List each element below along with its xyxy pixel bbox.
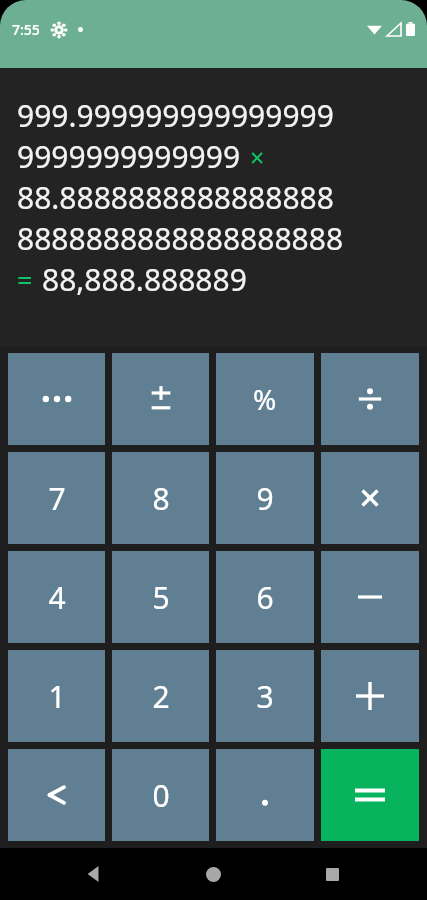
button[interactable] bbox=[8, 749, 105, 841]
staticText: 8 bbox=[152, 478, 170, 519]
button[interactable]: 8 bbox=[112, 452, 209, 544]
staticText: 88.8888888888888888 bbox=[17, 177, 334, 218]
staticText: 9 bbox=[256, 478, 274, 519]
button[interactable] bbox=[321, 551, 419, 643]
button[interactable]: % bbox=[216, 353, 314, 445]
staticText: 88,888.888889 bbox=[42, 259, 247, 300]
button[interactable]: Home bbox=[189, 850, 237, 898]
button[interactable]: 5 bbox=[112, 551, 209, 643]
button[interactable]: 4 bbox=[8, 551, 105, 643]
button[interactable]: Back bbox=[70, 850, 118, 898]
button[interactable]: 6 bbox=[216, 551, 314, 643]
button[interactable]: Recent apps bbox=[308, 850, 356, 898]
button[interactable] bbox=[321, 749, 419, 841]
button[interactable] bbox=[321, 650, 419, 742]
button[interactable]: 9 bbox=[216, 452, 314, 544]
button[interactable]: 3 bbox=[216, 650, 314, 742]
button[interactable]: 2 bbox=[112, 650, 209, 742]
staticText: % bbox=[253, 380, 277, 418]
staticText: 0 bbox=[152, 775, 170, 816]
button[interactable] bbox=[8, 353, 105, 445]
staticText: 8888888888888888888 bbox=[17, 218, 344, 259]
button[interactable] bbox=[321, 452, 419, 544]
button[interactable] bbox=[216, 749, 314, 841]
staticText: 5 bbox=[152, 577, 170, 618]
staticText: 999.999999999999999 bbox=[17, 95, 334, 136]
staticText: 1 bbox=[48, 676, 66, 717]
staticText: = bbox=[17, 261, 33, 298]
staticText: × bbox=[250, 140, 265, 174]
staticText: 3 bbox=[256, 676, 274, 717]
staticText: 2 bbox=[152, 676, 170, 717]
button[interactable]: 0 bbox=[112, 749, 209, 841]
button[interactable] bbox=[112, 353, 209, 445]
staticText: 7:55 bbox=[12, 20, 40, 39]
staticText: 9999999999999 bbox=[17, 136, 241, 177]
button[interactable] bbox=[321, 353, 419, 445]
staticText: 4 bbox=[48, 577, 66, 618]
button[interactable]: 7 bbox=[8, 452, 105, 544]
staticText: 7 bbox=[48, 478, 66, 519]
button[interactable]: 1 bbox=[8, 650, 105, 742]
staticText: 6 bbox=[256, 577, 274, 618]
